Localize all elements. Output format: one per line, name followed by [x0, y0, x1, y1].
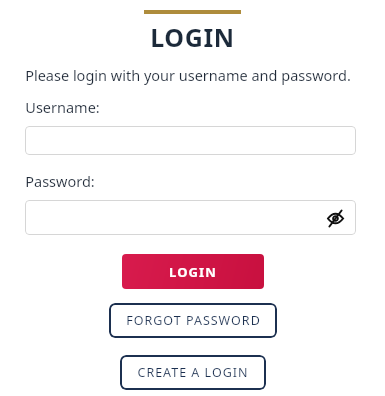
button[interactable]: Show password [323, 206, 347, 230]
button[interactable]: CREATE A LOGIN [120, 355, 266, 390]
button[interactable] [25, 126, 356, 155]
staticText: LOGIN [150, 20, 235, 54]
button[interactable]: LOGIN [122, 254, 264, 289]
button[interactable]: Show password [25, 200, 356, 235]
staticText: FORGOT PASSWORD [126, 312, 261, 329]
staticText: CREATE A LOGIN [137, 364, 249, 381]
staticText: Username: [25, 97, 100, 117]
staticText: LOGIN [169, 263, 217, 281]
button[interactable]: FORGOT PASSWORD [109, 303, 277, 338]
staticText: Please login with your username and pass… [25, 65, 351, 85]
staticText: Password: [25, 171, 95, 191]
